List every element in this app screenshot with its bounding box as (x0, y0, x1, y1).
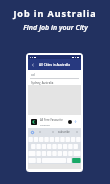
staticText: subscribe (58, 130, 70, 134)
staticText: ad (31, 73, 35, 77)
staticText: All Cities in Australia (39, 63, 71, 67)
button[interactable]: All Free Favourite (28, 115, 81, 128)
button[interactable]: Play (68, 120, 72, 124)
staticText: Sydney, Australia (31, 81, 54, 85)
other: Back (31, 63, 35, 67)
button[interactable]: Keyboard (28, 136, 81, 164)
other: Install (74, 120, 77, 123)
staticText: Job in Australia (13, 7, 97, 19)
staticText: Find Job in your City (23, 23, 88, 33)
button[interactable]: Back (28, 59, 81, 70)
other: Google (31, 131, 34, 134)
staticText: All Free Favourite (40, 118, 63, 122)
staticText: Weather (40, 123, 50, 126)
